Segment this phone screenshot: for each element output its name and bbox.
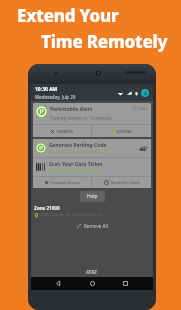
button[interactable]: Remove All — [33, 223, 151, 229]
button[interactable]: DISMISS — [33, 125, 91, 137]
staticText: Parkmobile Alert — [50, 106, 93, 113]
staticText: Generate Parking Code — [49, 142, 107, 149]
staticText: for Gated Parking Entry & Exit — [49, 149, 105, 154]
staticText: Scan Your Gate Ticket — [49, 161, 103, 168]
staticText: Zone 21600 — [34, 205, 60, 211]
button[interactable]: EXTEND — [92, 125, 151, 137]
button[interactable]: Back — [52, 277, 65, 290]
button[interactable]: Parkmobile Alert — [33, 103, 151, 137]
button[interactable]: Recently Used — [92, 177, 151, 188]
button[interactable]: Account — [141, 89, 149, 97]
staticText: Remove All — [84, 223, 108, 229]
button[interactable]: Favorite Zones — [33, 177, 91, 188]
staticText: DISMISS — [57, 129, 74, 134]
staticText: 2000 Lincoln St, Washington DC — [41, 212, 104, 218]
button[interactable]: Help — [80, 191, 105, 202]
staticText: Help — [87, 193, 98, 200]
staticText: Recently Used — [111, 180, 139, 186]
staticText: Extend Your — [17, 4, 119, 27]
staticText: 10:30 AM — [35, 86, 58, 93]
staticText: for Gated Parking Payment — [49, 168, 100, 173]
staticText: Favorite Zones — [51, 180, 80, 186]
staticText: Time Remotely — [41, 30, 168, 53]
button[interactable]: Recent apps — [119, 277, 132, 290]
staticText: Wednesday, July 20 — [35, 94, 76, 100]
button[interactable]: Scan Your Gate Ticket — [36, 161, 148, 173]
button[interactable]: Generate Parking Code — [36, 142, 148, 154]
staticText: 10:14 AM — [132, 106, 148, 111]
staticText: Parking expires in 15 minutes. — [50, 115, 114, 121]
button[interactable]: Home — [86, 277, 99, 290]
staticText: AT&T — [86, 269, 98, 275]
staticText: EXTEND — [117, 129, 133, 134]
